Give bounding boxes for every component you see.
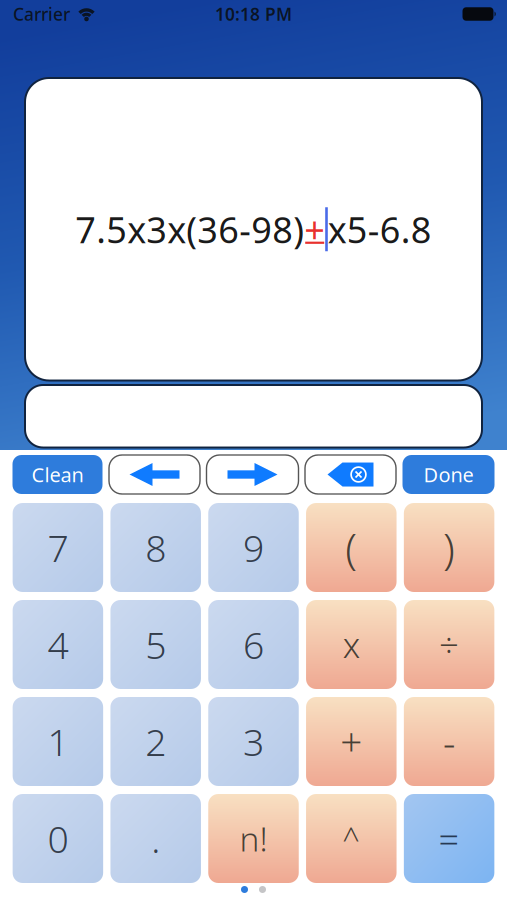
- staticText: 9: [243, 523, 264, 572]
- button[interactable]: -: [404, 697, 494, 786]
- staticText: +: [304, 205, 325, 253]
- staticText: 7: [47, 523, 68, 572]
- staticText: ^: [342, 818, 360, 859]
- button[interactable]: 0: [13, 794, 103, 883]
- staticText: Clean: [31, 461, 83, 488]
- button[interactable]: ^: [306, 794, 396, 883]
- button[interactable]: 8: [110, 503, 201, 592]
- button[interactable]: 4: [13, 600, 103, 689]
- staticText: .: [151, 814, 160, 863]
- staticText: 7.5x3x(36-98): [75, 205, 304, 253]
- staticText: 2: [145, 717, 166, 766]
- button[interactable]: (: [306, 503, 396, 592]
- staticText: Carrier: [13, 2, 70, 25]
- staticText: 6: [243, 620, 264, 669]
- button[interactable]: =: [404, 794, 494, 883]
- button[interactable]: x: [306, 600, 396, 689]
- button[interactable]: Delete: [305, 455, 396, 494]
- staticText: +: [340, 716, 362, 767]
- staticText: x5-6.8: [328, 205, 432, 253]
- button[interactable]: 5: [110, 600, 201, 689]
- button[interactable]: .: [110, 794, 201, 883]
- button[interactable]: 1: [13, 697, 103, 786]
- staticText: 1: [47, 717, 68, 766]
- staticText: 0: [47, 814, 68, 863]
- staticText: -: [443, 716, 455, 767]
- staticText: x: [343, 621, 360, 667]
- button[interactable]: ): [404, 503, 494, 592]
- staticText: n!: [239, 816, 267, 861]
- staticText: ÷: [439, 621, 459, 667]
- button[interactable]: 7: [13, 503, 103, 592]
- staticText: 8: [145, 523, 166, 572]
- staticText: 3: [243, 717, 264, 766]
- button[interactable]: Done: [402, 455, 494, 494]
- staticText: 4: [47, 620, 68, 669]
- button[interactable]: Move cursor right: [206, 455, 298, 494]
- button[interactable]: Clean: [12, 455, 102, 494]
- staticText: ): [443, 519, 455, 576]
- button[interactable]: 6: [208, 600, 299, 689]
- staticText: (: [345, 519, 357, 576]
- staticText: =: [439, 815, 460, 862]
- button[interactable]: n!: [208, 794, 299, 883]
- staticText: 10:18 PM: [215, 2, 292, 25]
- staticText: 5: [145, 620, 166, 669]
- button[interactable]: 3: [208, 697, 299, 786]
- staticText: Done: [423, 461, 473, 488]
- button[interactable]: 2: [110, 697, 201, 786]
- button[interactable]: 9: [208, 503, 299, 592]
- button[interactable]: ÷: [404, 600, 494, 689]
- button[interactable]: +: [306, 697, 396, 786]
- button[interactable]: Move cursor left: [109, 455, 200, 494]
